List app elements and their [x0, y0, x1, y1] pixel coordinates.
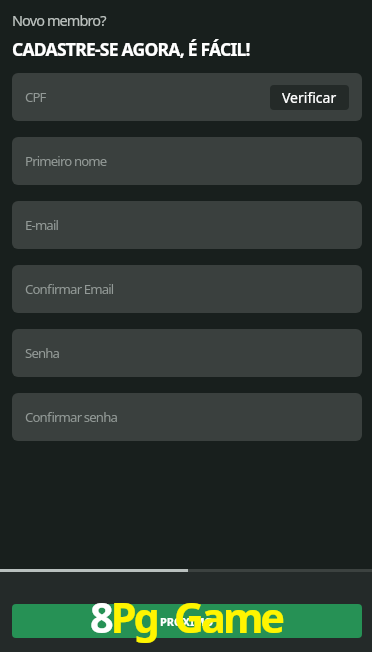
staticText: Senha — [25, 344, 60, 362]
button[interactable]: Confirmar senha — [12, 393, 362, 441]
button[interactable]: Primeiro nome — [12, 137, 362, 185]
button[interactable]: CPF — [12, 73, 362, 121]
staticText: E-mail — [25, 216, 59, 234]
staticText: Game — [174, 589, 283, 646]
button[interactable]: Confirmar Email — [12, 265, 362, 313]
staticText: CADASTRE-SE AGORA, É FÁCIL! — [12, 37, 250, 61]
staticText: Confirmar senha — [25, 408, 118, 426]
staticText: Novo membro? — [12, 10, 106, 30]
staticText: Verificar — [282, 88, 337, 107]
staticText: 8Pg — [90, 589, 157, 646]
button[interactable]: PRÓXIMO — [12, 604, 362, 638]
button[interactable]: Verificar — [270, 85, 349, 110]
staticText: PRÓXIMO — [160, 614, 214, 629]
button[interactable]: Senha — [12, 329, 362, 377]
button[interactable]: E-mail — [12, 201, 362, 249]
staticText: Confirmar Email — [25, 280, 114, 298]
staticText: CPF — [25, 88, 46, 106]
staticText: Primeiro nome — [25, 152, 107, 170]
